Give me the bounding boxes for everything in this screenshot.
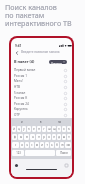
staticText: Фильтры: [51, 61, 62, 64]
button[interactable]: Скрыть клавиатуру: [65, 164, 68, 167]
staticText: ю: [61, 143, 64, 147]
button[interactable]: ю: [60, 142, 64, 148]
button[interactable]: а: [30, 134, 35, 140]
button[interactable]: л: [52, 134, 56, 140]
staticText: Россия 1: [14, 74, 27, 78]
button[interactable]: 123: [12, 150, 24, 156]
staticText: в: [40, 120, 42, 124]
button[interactable]: м: [35, 142, 39, 148]
button[interactable]: э: [67, 134, 71, 140]
staticText: н: [38, 127, 40, 131]
button[interactable]: Назад: [14, 49, 69, 55]
button[interactable]: ф: [12, 134, 17, 140]
staticText: НТВ: [14, 85, 21, 89]
staticText: в: [26, 135, 28, 139]
button[interactable]: т: [45, 142, 49, 148]
staticText: х: [63, 127, 65, 131]
button[interactable]: Матч!: [14, 78, 67, 84]
staticText: т: [46, 143, 48, 147]
button[interactable]: Россия 24: [14, 101, 67, 107]
staticText: а: [32, 135, 34, 139]
staticText: я: [21, 143, 23, 147]
button[interactable]: в: [24, 134, 29, 140]
button[interactable]: ъ: [67, 126, 71, 132]
button[interactable]: Россия К: [14, 95, 67, 101]
button[interactable]: и: [21, 120, 23, 124]
button[interactable]: я: [20, 142, 24, 148]
button[interactable]: Эмодзи: [15, 164, 18, 167]
staticText: г: [43, 127, 45, 131]
staticText: с: [31, 143, 33, 147]
button[interactable]: д: [57, 134, 61, 140]
staticText: щ: [53, 127, 56, 131]
button[interactable]: й: [12, 126, 16, 132]
staticText: ч: [26, 143, 28, 147]
staticText: В пакет (4): [14, 59, 35, 64]
staticText: д: [58, 135, 60, 139]
staticText: е: [33, 127, 35, 131]
button[interactable]: г: [42, 126, 46, 132]
button[interactable]: Карусель: [14, 106, 67, 112]
button[interactable]: е: [32, 126, 36, 132]
button[interactable]: ч: [25, 142, 29, 148]
staticText: к: [28, 127, 30, 131]
staticText: ОТР: [14, 113, 20, 117]
button[interactable]: Поиск: [56, 150, 71, 156]
button[interactable]: 5 канал: [14, 90, 67, 96]
button[interactable]: с: [30, 142, 34, 148]
button[interactable]: ж: [62, 134, 66, 140]
button[interactable]: б: [55, 142, 59, 148]
staticText: 9:41: [15, 44, 22, 48]
staticText: Введите название канала: [21, 50, 60, 54]
button[interactable]: на: [58, 120, 62, 124]
staticText: п: [38, 135, 40, 139]
staticText: й: [13, 127, 15, 131]
button[interactable]: ц: [17, 126, 21, 132]
button[interactable]: щ: [52, 126, 56, 132]
staticText: ⇧: [14, 144, 17, 147]
button[interactable]: ⇧: [12, 142, 19, 148]
button[interactable]: п: [36, 134, 41, 140]
button[interactable]: н: [37, 126, 41, 132]
button[interactable]: у: [22, 126, 26, 132]
staticText: и: [21, 120, 23, 124]
button[interactable]: в: [40, 120, 42, 124]
staticText: м: [36, 143, 38, 147]
staticText: на: [58, 120, 62, 124]
staticText: 123: [16, 151, 21, 155]
button[interactable]: ш: [47, 126, 51, 132]
button[interactable]: к: [27, 126, 31, 132]
button[interactable]: Россия 1: [14, 73, 67, 79]
button[interactable]: ь: [50, 142, 54, 148]
staticText: Россия 24: [14, 102, 29, 106]
button[interactable]: ы: [18, 134, 23, 140]
staticText: ц: [18, 127, 20, 131]
button[interactable]: р: [42, 134, 46, 140]
button[interactable]: НТВ: [14, 84, 67, 90]
staticText: з: [58, 127, 60, 131]
staticText: Поиск: [60, 151, 68, 155]
button[interactable]: з: [57, 126, 61, 132]
staticText: Матч!: [14, 79, 23, 83]
staticText: Россия К: [14, 96, 28, 100]
staticText: Первый канал: [14, 68, 36, 72]
staticText: и: [41, 143, 43, 147]
button[interactable]: ⌫: [65, 142, 71, 148]
staticText: ш: [48, 127, 51, 131]
staticText: о: [48, 135, 50, 139]
staticText: у: [23, 127, 25, 131]
button[interactable]: и: [40, 142, 44, 148]
button[interactable]: х: [62, 126, 66, 132]
staticText: Поиск каналов: [5, 2, 57, 12]
button[interactable]: ОТР: [14, 112, 67, 118]
staticText: интерактивного ТВ: [5, 18, 72, 28]
staticText: 5 канал: [14, 91, 26, 95]
staticText: л: [53, 135, 55, 139]
other: Назад: [14, 50, 19, 55]
staticText: ф: [14, 135, 16, 139]
button[interactable]: Первый канал: [14, 67, 67, 73]
button[interactable]: о: [47, 134, 51, 140]
staticText: ь: [51, 143, 53, 147]
button[interactable]: Фильтры: [51, 60, 65, 64]
